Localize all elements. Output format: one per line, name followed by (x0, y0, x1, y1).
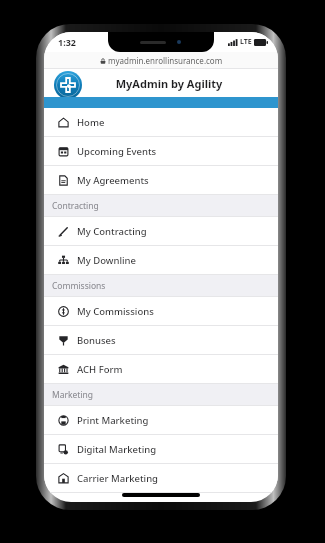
button[interactable]: My Agreements (44, 166, 278, 195)
button[interactable]: My Contracting (44, 217, 278, 246)
staticText: 1:32 (58, 36, 76, 48)
button[interactable]: Upcoming Events (44, 137, 278, 166)
staticText: MyAdmin by Agility (60, 76, 278, 91)
staticText: Contracting (52, 200, 99, 212)
button[interactable]: Print Marketing (44, 406, 278, 435)
staticText: Print Marketing (77, 414, 149, 427)
staticText: My Commissions (77, 305, 154, 318)
staticText: My Agreements (77, 174, 149, 187)
staticText: Home (77, 116, 105, 129)
button[interactable]: Agility logo menu (52, 71, 84, 99)
button[interactable]: My Downline (44, 246, 278, 275)
staticText: Marketing (52, 389, 94, 401)
staticText: LTE (240, 37, 252, 47)
staticText: myadmin.enrollinsurance.com (108, 55, 223, 66)
button[interactable]: Digital Marketing (44, 435, 278, 464)
button[interactable]: Carrier Marketing (44, 464, 278, 493)
button[interactable]: My Commissions (44, 297, 278, 326)
staticText: Digital Marketing (77, 443, 157, 456)
staticText: My Contracting (77, 225, 147, 238)
button[interactable]: ACH Form (44, 355, 278, 384)
staticText: Upcoming Events (77, 145, 157, 158)
staticText: My Downline (77, 254, 136, 267)
staticText: Commissions (52, 280, 106, 292)
staticText: ACH Form (77, 363, 123, 376)
staticText: Bonuses (77, 334, 116, 347)
button[interactable]: Bonuses (44, 326, 278, 355)
staticText: Carrier Marketing (77, 472, 158, 485)
button[interactable]: Home (44, 108, 278, 137)
